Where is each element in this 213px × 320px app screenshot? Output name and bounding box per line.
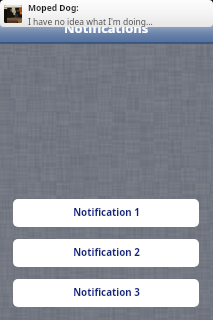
button[interactable]: Moped Dog: xyxy=(0,0,213,27)
button[interactable]: Notification 1 xyxy=(13,199,199,227)
staticText: I have no idea what I'm doing... xyxy=(28,16,153,27)
button[interactable]: Notification 2 xyxy=(13,239,199,267)
staticText: Notification 3 xyxy=(73,286,140,299)
staticText: Notifications xyxy=(64,19,149,37)
staticText: Notification 2 xyxy=(73,246,140,259)
button[interactable]: Notification 3 xyxy=(13,279,199,307)
staticText: Moped Dog: xyxy=(28,2,79,14)
staticText: Notification 1 xyxy=(73,206,140,219)
